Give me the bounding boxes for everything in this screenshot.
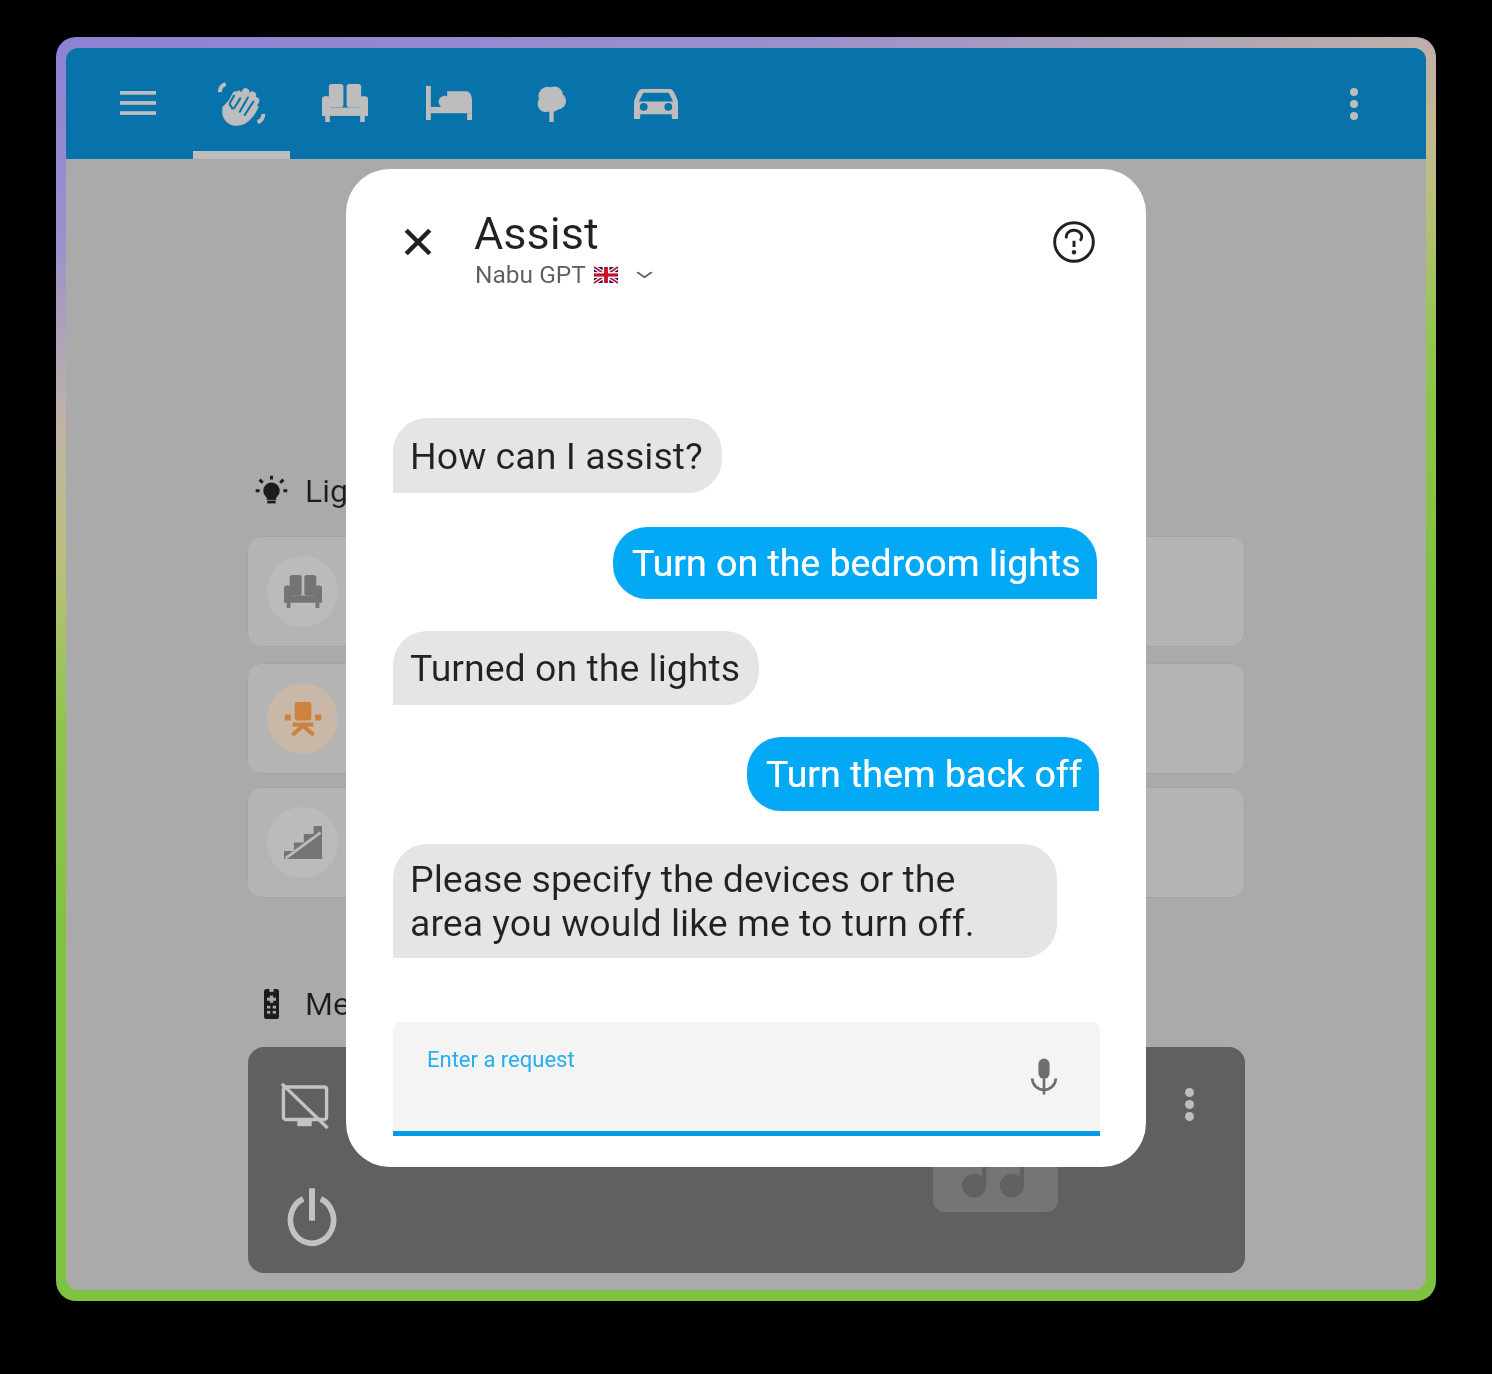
button[interactable] xyxy=(247,787,1245,898)
button[interactable]: Living room xyxy=(301,59,389,147)
staticText: Lights xyxy=(305,472,393,510)
button[interactable]: Media options xyxy=(1159,1074,1219,1134)
button[interactable]: More options xyxy=(1314,64,1394,144)
staticText: Turn them back off xyxy=(766,752,1082,796)
staticText: Turned on the lights xyxy=(410,646,741,690)
button[interactable]: Enter a request xyxy=(393,1022,1100,1131)
button[interactable]: Close xyxy=(384,208,452,276)
button[interactable]: Turn them back off xyxy=(747,737,1099,811)
button[interactable] xyxy=(247,536,1245,647)
button[interactable]: Voice input xyxy=(1008,1040,1080,1112)
button[interactable]: Menu xyxy=(94,59,182,147)
button[interactable]: Media options xyxy=(248,1047,1245,1273)
button[interactable]: Please specify the devices or the xyxy=(393,844,1057,958)
button[interactable]: Home xyxy=(198,59,286,147)
button[interactable]: Nabu GPT xyxy=(475,260,653,289)
button[interactable]: Help xyxy=(1040,208,1108,276)
button[interactable] xyxy=(247,663,1245,774)
button[interactable]: Garage xyxy=(612,59,700,147)
button[interactable]: Turned on the lights xyxy=(393,631,759,705)
staticText: area you would like me to turn off. xyxy=(410,901,975,945)
button[interactable]: Bedroom xyxy=(405,59,493,147)
staticText: How can I assist? xyxy=(410,434,703,478)
staticText: Media players xyxy=(305,985,504,1023)
staticText: Nabu GPT xyxy=(475,260,586,289)
button[interactable]: Turn on the bedroom lights xyxy=(613,527,1097,599)
staticText: Enter a request xyxy=(427,1047,575,1073)
staticText: Assist xyxy=(474,207,599,260)
button[interactable]: How can I assist? xyxy=(393,418,722,493)
staticText: Please specify the devices or the xyxy=(410,857,956,901)
staticText: Turn on the bedroom lights xyxy=(632,541,1081,585)
button[interactable]: Garden xyxy=(507,59,595,147)
